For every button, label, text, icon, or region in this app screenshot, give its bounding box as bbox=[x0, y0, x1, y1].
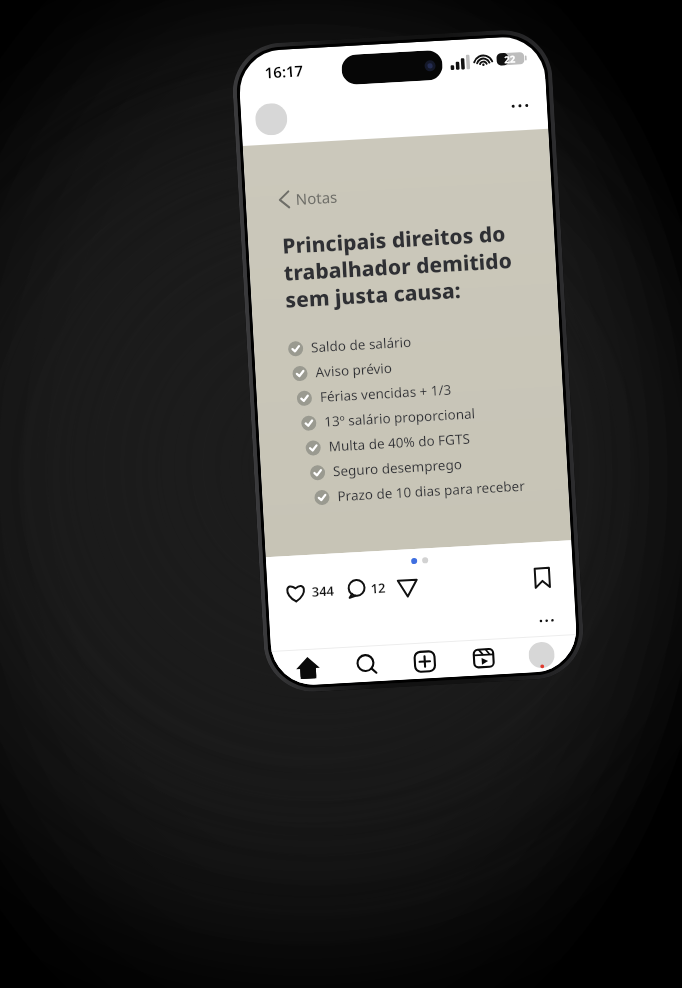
button[interactable]: Home bbox=[285, 649, 331, 686]
button[interactable]: Seguro desemprego bbox=[310, 450, 547, 482]
button[interactable]: Aviso prévio bbox=[292, 351, 542, 382]
button[interactable] bbox=[254, 102, 288, 136]
staticText: 16:17 bbox=[264, 60, 304, 82]
staticText: 344 bbox=[311, 581, 335, 601]
button[interactable]: More options bbox=[506, 92, 534, 119]
staticText: 12 bbox=[370, 579, 386, 597]
button[interactable]: Saldo de salário bbox=[288, 326, 540, 358]
button[interactable]: More bbox=[535, 609, 558, 632]
button[interactable]: Prazo de 10 dias para receber bbox=[314, 475, 549, 506]
button[interactable]: Search bbox=[344, 646, 390, 683]
button[interactable]: Create bbox=[402, 642, 448, 680]
button[interactable]: Férias vencidas + 1/3 bbox=[296, 375, 543, 407]
button[interactable]: Reels bbox=[461, 639, 507, 676]
staticText: Aviso prévio bbox=[315, 359, 393, 381]
staticText: Saldo de salário bbox=[311, 333, 412, 356]
button[interactable]: More options bbox=[240, 79, 548, 146]
button[interactable]: Notas bbox=[279, 187, 338, 210]
staticText: Notas bbox=[295, 187, 338, 209]
staticText: Principais direitos do trabalhador demit… bbox=[282, 218, 538, 314]
button[interactable]: Profile bbox=[519, 636, 564, 673]
staticText: Multa de 40% do FGTS bbox=[328, 430, 471, 456]
button[interactable]: Comments, 12 bbox=[345, 577, 386, 601]
button[interactable]: Like, 344 bbox=[283, 578, 335, 605]
button[interactable]: Save bbox=[529, 564, 556, 591]
staticText: 22 bbox=[504, 52, 516, 66]
staticText: 13º salário proporcional bbox=[324, 404, 476, 431]
button[interactable]: 13º salário proporcional bbox=[301, 400, 544, 432]
staticText: Prazo de 10 dias para receber bbox=[337, 477, 526, 505]
staticText: Seguro desemprego bbox=[332, 455, 462, 480]
button[interactable]: Multa de 40% do FGTS bbox=[305, 425, 546, 457]
button[interactable]: Share bbox=[394, 573, 421, 600]
staticText: Férias vencidas + 1/3 bbox=[319, 381, 452, 406]
